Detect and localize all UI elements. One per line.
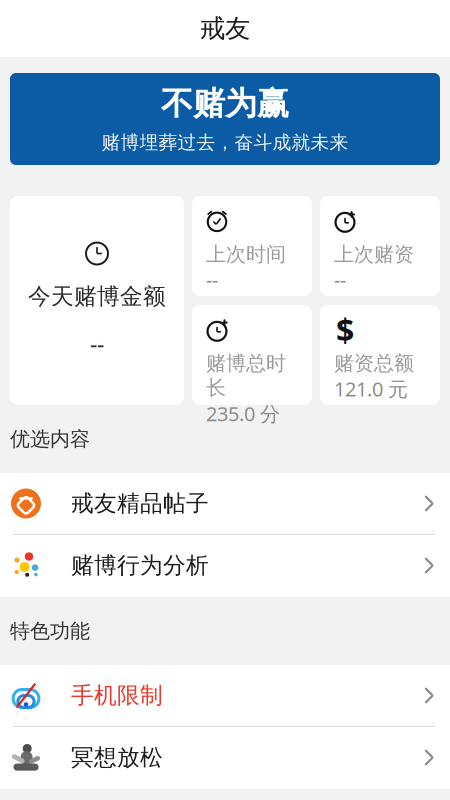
button[interactable]: 戒友精品帖子 xyxy=(0,473,450,535)
staticText: 235.0 分 xyxy=(206,400,280,427)
button[interactable]: 手机限制 xyxy=(0,665,450,727)
staticText: 121.0 元 xyxy=(334,376,408,402)
staticText: -- xyxy=(334,267,346,293)
staticText: 不赌为赢 xyxy=(161,84,289,123)
staticText: 今天赌博金额 xyxy=(28,282,166,310)
staticText: $ xyxy=(336,309,354,351)
staticText: 冥想放松 xyxy=(71,744,163,771)
staticText: -- xyxy=(206,267,218,293)
button[interactable]: 冥想放松 xyxy=(0,727,450,789)
staticText: 戒友 xyxy=(200,13,250,44)
staticText: 上次时间 xyxy=(206,242,286,267)
staticText: -- xyxy=(90,328,104,358)
staticText: 赌资总额 xyxy=(334,351,414,376)
staticText: 赌博总时长 xyxy=(206,351,286,400)
staticText: 手机限制 xyxy=(71,682,163,709)
staticText: 赌博行为分析 xyxy=(71,552,209,579)
staticText: 戒友精品帖子 xyxy=(71,490,209,517)
staticText: 优选内容 xyxy=(10,427,90,451)
staticText: 赌博埋葬过去，奋斗成就未来 xyxy=(101,131,348,154)
staticText: 特色功能 xyxy=(10,619,90,643)
button[interactable]: 赌博行为分析 xyxy=(0,535,450,597)
staticText: 上次赌资 xyxy=(334,242,414,267)
